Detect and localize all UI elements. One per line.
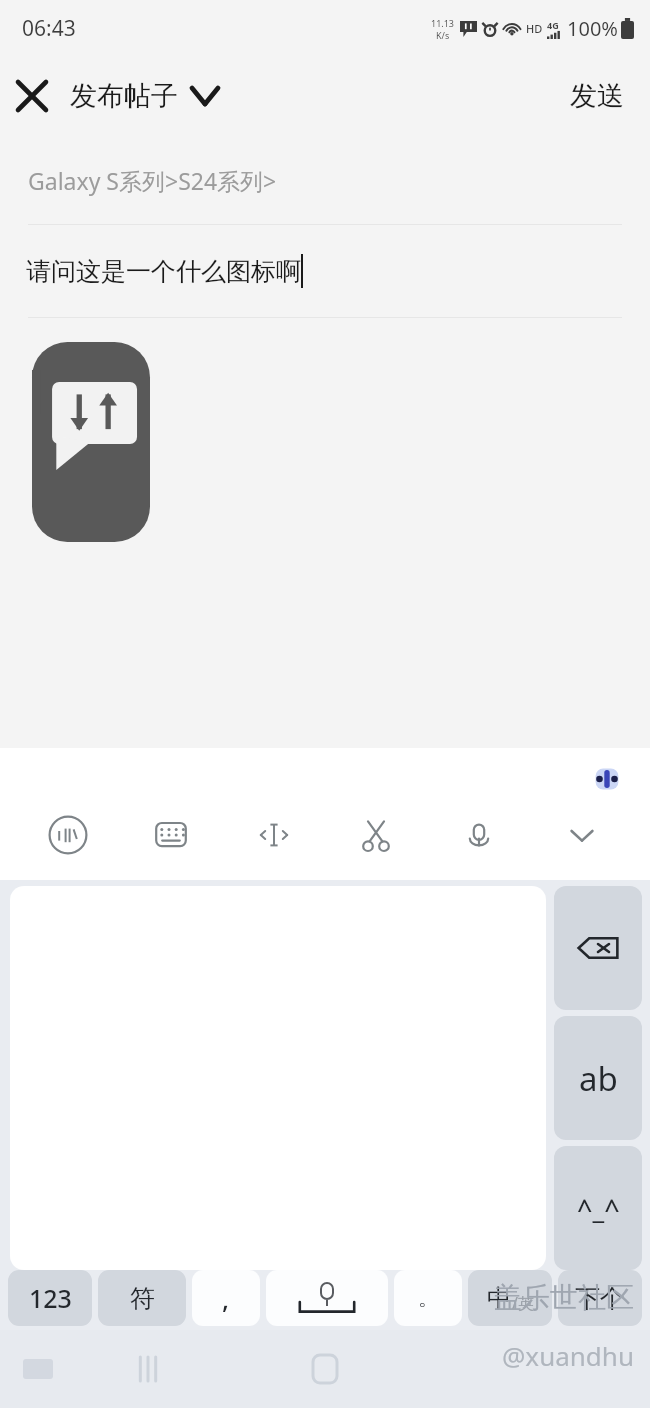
staticText: 。 xyxy=(418,1286,438,1311)
staticText: ab xyxy=(579,1056,618,1101)
staticText: 中 xyxy=(487,1283,512,1314)
staticText: 发送 xyxy=(570,79,624,113)
button[interactable]: 123 xyxy=(8,1270,92,1326)
button[interactable]: 中 xyxy=(468,1270,552,1326)
button[interactable]: Switch to English xyxy=(554,1016,642,1140)
button[interactable]: Keyboard layout xyxy=(136,800,206,870)
button[interactable]: Move cursor xyxy=(239,800,309,870)
staticText: @xuandhu xyxy=(502,1338,634,1373)
button[interactable]: Voice input xyxy=(444,800,514,870)
button[interactable]: 。 xyxy=(394,1270,462,1326)
staticText: , xyxy=(222,1281,230,1316)
button[interactable]: Hide keyboard xyxy=(547,800,617,870)
button[interactable]: Close xyxy=(0,64,64,128)
staticText: 4G xyxy=(547,19,559,31)
staticText: 100% xyxy=(567,15,618,42)
staticText: 发布帖子 xyxy=(70,79,178,113)
button[interactable]: 符 xyxy=(98,1270,186,1326)
button[interactable]: 发送 xyxy=(544,69,650,123)
button[interactable]: Backspace xyxy=(554,886,642,1010)
staticText: HD xyxy=(526,21,543,36)
button[interactable]: Keyboard xyxy=(16,1347,60,1391)
staticText: 请问这是一个什么图标啊 xyxy=(26,256,301,287)
staticText: 盖乐世社区 xyxy=(494,1280,634,1315)
button[interactable]: Recents xyxy=(120,1341,176,1397)
staticText: 11.13 xyxy=(431,17,455,29)
staticText: 下个 xyxy=(575,1283,625,1314)
button[interactable]: Home xyxy=(297,1341,353,1397)
staticText: K/s xyxy=(436,29,450,41)
staticText: Galaxy S系列>S24系列> xyxy=(28,165,277,196)
button[interactable]: , xyxy=(192,1270,260,1326)
button[interactable]: 下个 xyxy=(558,1270,642,1326)
button[interactable]: 发布帖子 xyxy=(64,71,224,121)
button[interactable]: Cut xyxy=(341,800,411,870)
button[interactable]: Space xyxy=(266,1270,388,1326)
staticText: 06:43 xyxy=(22,14,76,43)
staticText: 符 xyxy=(130,1283,155,1314)
button[interactable]: Assistant xyxy=(592,764,622,794)
staticText: ^_^ xyxy=(577,1190,620,1227)
button[interactable]: 请问这是一个什么图标啊 xyxy=(0,225,650,317)
staticText: /英 xyxy=(512,1292,534,1314)
button[interactable]: Emoticons xyxy=(554,1146,642,1270)
button[interactable]: Input method xyxy=(33,800,103,870)
button[interactable]: Galaxy S系列>S24系列> xyxy=(0,136,650,224)
staticText: 123 xyxy=(29,1281,72,1315)
